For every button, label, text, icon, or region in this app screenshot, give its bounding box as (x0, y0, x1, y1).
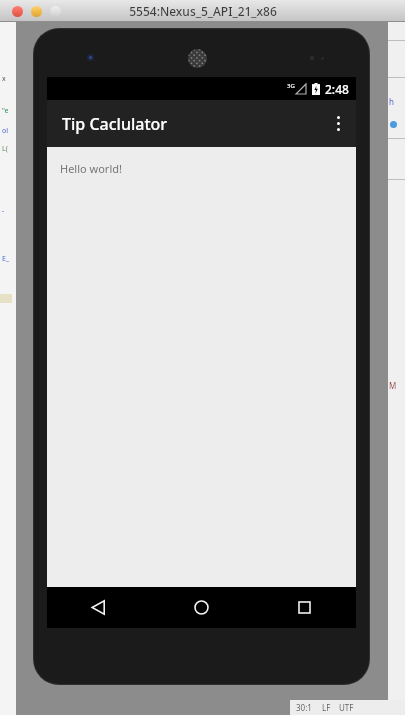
staticText: LF (322, 702, 331, 713)
staticText: L( (2, 144, 8, 154)
staticText: "e (2, 106, 9, 116)
staticText: E_ (2, 254, 9, 264)
staticText: UTF (339, 702, 354, 713)
staticText: 5554:Nexus_5_API_21_x86 (129, 3, 277, 19)
button[interactable]: Home (150, 587, 253, 628)
button[interactable]: Recent apps (253, 587, 356, 628)
button[interactable]: More options (320, 100, 356, 147)
button[interactable] (12, 6, 23, 17)
button[interactable]: Back (47, 587, 150, 628)
staticText: M (389, 380, 397, 391)
button[interactable] (31, 6, 42, 17)
staticText: 30:1 (296, 702, 312, 713)
staticText: 2:48 (325, 81, 349, 97)
staticText: h (389, 96, 394, 107)
staticText: Hello world! (60, 161, 122, 176)
staticText: Tip Caclulator (62, 113, 168, 135)
staticText: x (2, 74, 6, 84)
button[interactable] (50, 6, 61, 17)
staticText: ol (2, 126, 9, 136)
staticText: - (2, 206, 5, 216)
staticText: 3G (287, 82, 295, 90)
